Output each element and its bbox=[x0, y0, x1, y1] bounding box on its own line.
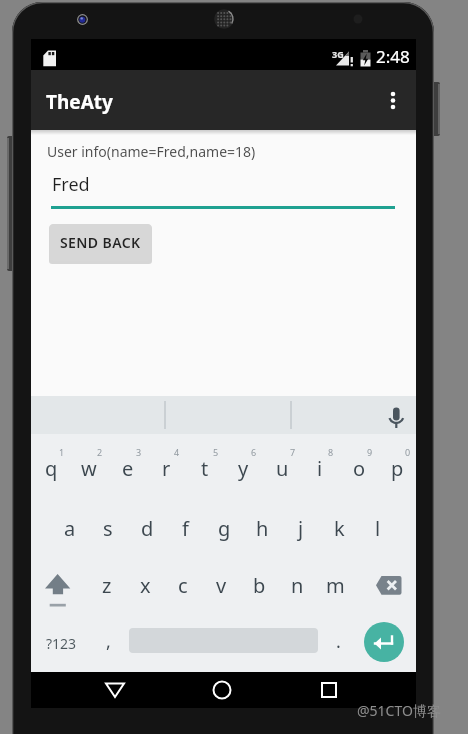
button[interactable]: w bbox=[65, 452, 113, 484]
staticText: 1 bbox=[59, 446, 65, 458]
staticText: s bbox=[103, 515, 113, 542]
staticText: Fred bbox=[52, 172, 90, 197]
staticText: , bbox=[106, 629, 111, 654]
button[interactable]: h bbox=[238, 512, 286, 544]
button[interactable]: ?123 bbox=[37, 627, 85, 659]
staticText: User info(name=Fred,name=18) bbox=[47, 142, 256, 161]
staticText: o bbox=[353, 455, 366, 482]
staticText: 9 bbox=[367, 446, 373, 458]
button[interactable]: d bbox=[123, 512, 171, 544]
staticText: m bbox=[326, 572, 345, 599]
button[interactable]: s bbox=[84, 512, 132, 544]
staticText: 5 bbox=[213, 446, 219, 458]
staticText: y bbox=[238, 455, 249, 482]
staticText: 3 bbox=[136, 446, 142, 458]
button[interactable]: i bbox=[296, 452, 344, 484]
button[interactable] bbox=[202, 672, 242, 708]
staticText: j bbox=[298, 515, 304, 542]
staticText: e bbox=[122, 455, 134, 482]
button[interactable]: j bbox=[277, 512, 325, 544]
button[interactable]: z bbox=[83, 569, 131, 601]
button[interactable]: f bbox=[161, 512, 209, 544]
staticText: x bbox=[140, 572, 151, 599]
staticText: k bbox=[334, 515, 345, 542]
button[interactable]: g bbox=[200, 512, 248, 544]
button[interactable]: v bbox=[197, 569, 245, 601]
staticText: f bbox=[182, 515, 189, 542]
staticText: z bbox=[102, 572, 112, 599]
button[interactable]: k bbox=[315, 512, 363, 544]
button[interactable] bbox=[381, 401, 413, 433]
staticText: 0 bbox=[405, 446, 411, 458]
button[interactable] bbox=[364, 622, 404, 662]
staticText: TheAty bbox=[46, 89, 113, 115]
button[interactable]: , bbox=[84, 625, 132, 657]
button[interactable]: m bbox=[311, 569, 359, 601]
button[interactable] bbox=[95, 672, 135, 708]
button[interactable]: x bbox=[121, 569, 169, 601]
button[interactable]: o bbox=[335, 452, 383, 484]
staticText: 3G bbox=[332, 48, 344, 60]
button[interactable]: e bbox=[104, 452, 152, 484]
staticText: 2 bbox=[97, 446, 103, 458]
button[interactable]: Fred bbox=[47, 169, 395, 211]
button[interactable]: n bbox=[273, 569, 321, 601]
button[interactable]: SEND BACK bbox=[50, 224, 151, 261]
staticText: w bbox=[81, 455, 97, 482]
staticText: g bbox=[218, 515, 231, 542]
staticText: 8 bbox=[328, 446, 334, 458]
staticText: v bbox=[216, 572, 227, 599]
staticText: l bbox=[375, 515, 381, 542]
staticText: p bbox=[391, 455, 404, 482]
staticText: 2:48 bbox=[376, 45, 410, 68]
staticText: SEND BACK bbox=[60, 233, 141, 252]
button[interactable]: t bbox=[181, 452, 229, 484]
staticText: h bbox=[256, 515, 269, 542]
staticText: r bbox=[162, 455, 171, 482]
staticText: u bbox=[276, 455, 289, 482]
staticText: c bbox=[178, 572, 188, 599]
staticText: i bbox=[317, 455, 323, 482]
button[interactable]: . bbox=[314, 625, 362, 657]
button[interactable]: b bbox=[235, 569, 283, 601]
staticText: n bbox=[291, 572, 304, 599]
button[interactable]: y bbox=[219, 452, 267, 484]
button[interactable] bbox=[378, 80, 408, 120]
button[interactable]: u bbox=[258, 452, 306, 484]
staticText: t bbox=[201, 455, 209, 482]
staticText: 7 bbox=[290, 446, 296, 458]
staticText: 4 bbox=[174, 446, 180, 458]
staticText: b bbox=[253, 572, 266, 599]
button[interactable]: q bbox=[27, 452, 75, 484]
button[interactable] bbox=[373, 571, 413, 605]
staticText: a bbox=[64, 515, 76, 542]
staticText: @51CTO博客 bbox=[357, 701, 441, 720]
button[interactable]: a bbox=[46, 512, 94, 544]
button[interactable] bbox=[39, 569, 77, 611]
button[interactable]: r bbox=[142, 452, 190, 484]
staticText: 6 bbox=[251, 446, 257, 458]
staticText: q bbox=[45, 455, 58, 482]
staticText: . bbox=[336, 629, 341, 654]
staticText: ?123 bbox=[46, 634, 77, 653]
button[interactable]: p bbox=[373, 452, 421, 484]
button[interactable]: c bbox=[159, 569, 207, 601]
button[interactable] bbox=[309, 672, 349, 708]
button[interactable]: l bbox=[354, 512, 402, 544]
staticText: d bbox=[141, 515, 154, 542]
